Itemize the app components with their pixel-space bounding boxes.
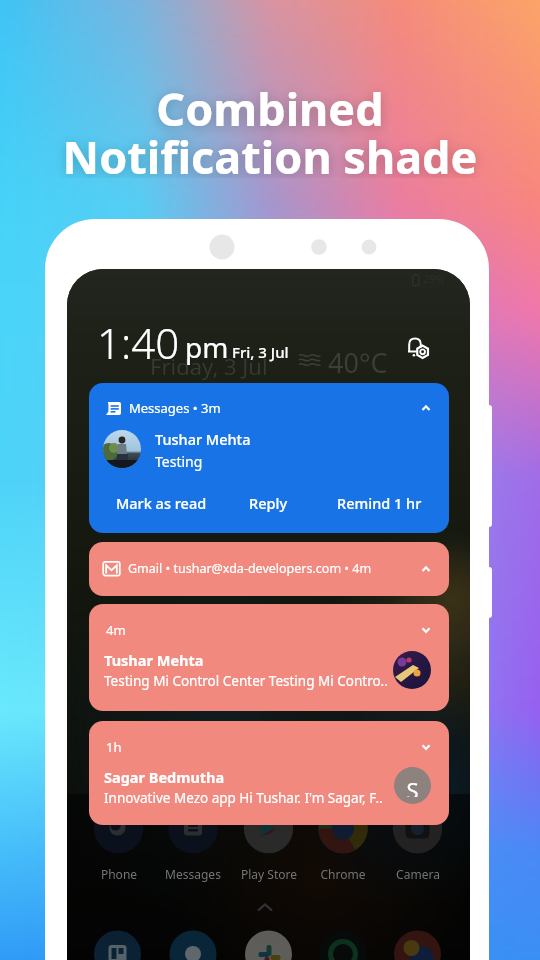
staticText: Fri, 3 Jul: [232, 342, 289, 362]
staticText: 1:40: [97, 314, 180, 371]
staticText: Testing Mi Control Center Testing Mi Con…: [104, 672, 388, 690]
button[interactable]: Collapse: [420, 563, 432, 575]
button[interactable]: 1h: [89, 721, 449, 825]
staticText: Camera: [373, 866, 463, 882]
staticText: Combined Notification shade: [0, 78, 540, 178]
button[interactable]: Reply: [249, 493, 288, 513]
button[interactable]: Remind 1 hr: [337, 493, 422, 513]
staticText: Messages • 3m: [129, 399, 221, 417]
staticText: Gmail • tushar@xda-developers.com • 4m: [128, 560, 372, 577]
staticText: 1h: [106, 738, 122, 756]
button[interactable]: Gmail • tushar@xda-developers.com • 4m: [89, 542, 449, 596]
staticText: Friday, 3 Jul: [150, 351, 268, 381]
staticText: Tushar Mehta: [155, 429, 251, 449]
staticText: 40°C: [328, 344, 388, 381]
button[interactable]: Expand: [420, 624, 432, 636]
staticText: Phone: [74, 866, 164, 882]
staticText: Reply: [249, 493, 288, 513]
button[interactable]: Expand: [420, 741, 432, 753]
button[interactable]: Mark as read: [116, 493, 207, 513]
staticText: S: [394, 775, 431, 797]
staticText: Tushar Mehta: [104, 650, 204, 670]
button[interactable]: Collapse: [420, 402, 432, 414]
staticText: pm: [185, 328, 229, 366]
button[interactable]: Notification settings: [407, 336, 431, 362]
staticText: Testing: [155, 452, 203, 471]
staticText: Remind 1 hr: [337, 493, 422, 513]
staticText: Messages: [148, 866, 238, 882]
staticText: Innovative Mezo app Hi Tushar. I'm Sagar…: [104, 789, 383, 807]
staticText: Play Store: [224, 866, 314, 882]
button[interactable]: Messages • 3m: [89, 383, 449, 533]
staticText: Mark as read: [116, 493, 207, 513]
button[interactable]: 4m: [89, 604, 449, 711]
staticText: Chrome: [298, 866, 388, 882]
staticText: Sagar Bedmutha: [104, 767, 225, 787]
staticText: 4m: [106, 621, 126, 639]
